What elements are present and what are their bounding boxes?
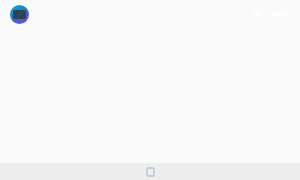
button[interactable]: Profile [10,5,29,24]
button[interactable]: Home [142,164,158,180]
